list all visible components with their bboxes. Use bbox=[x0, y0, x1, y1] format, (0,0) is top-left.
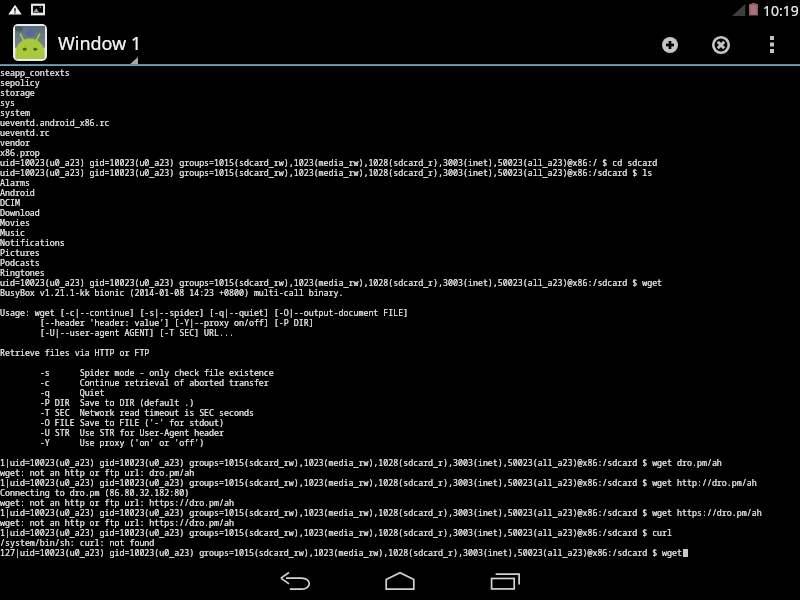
staticText: x86.prop bbox=[0, 147, 40, 158]
button[interactable]: Terminal output bbox=[0, 66, 800, 558]
staticText: Usage: wget [-c|--continue] [-s|--spider… bbox=[0, 307, 409, 318]
button[interactable]: Recent apps bbox=[455, 560, 555, 600]
staticText: Retrieve files via HTTP or FTP bbox=[0, 347, 150, 358]
staticText: -U STR Use STR for User-Agent header bbox=[0, 427, 225, 438]
staticText: DCIM bbox=[0, 197, 20, 208]
staticText: Download bbox=[0, 207, 40, 218]
staticText: BusyBox v1.21.1-kk bionic (2014-01-08 14… bbox=[0, 287, 344, 298]
staticText: Android bbox=[0, 187, 35, 198]
staticText: Podcasts bbox=[0, 257, 40, 268]
staticText: sys bbox=[0, 97, 15, 108]
button[interactable]: New window bbox=[646, 25, 694, 64]
staticText: ueventd.android_x86.rc bbox=[0, 117, 110, 128]
staticText: Connecting to dro.pm (86.80.32.182:80) bbox=[0, 487, 190, 498]
staticText: Music bbox=[0, 227, 25, 238]
staticText: -Y Use proxy ('on' or 'off') bbox=[0, 437, 205, 448]
staticText: Ringtones bbox=[0, 267, 45, 278]
button[interactable]: Window 1 bbox=[8, 25, 148, 64]
staticText: -c Continue retrieval of aborted transfe… bbox=[0, 377, 269, 388]
staticText: sepolicy bbox=[0, 77, 40, 88]
staticText: Alarms bbox=[0, 177, 30, 188]
staticText: -q Quiet bbox=[0, 387, 105, 398]
staticText: -P DIR Save to DIR (default .) bbox=[0, 397, 195, 408]
staticText: 1|uid=10023(u0_a23) gid=10023(u0_a23) gr… bbox=[0, 457, 722, 468]
staticText: -T SEC Network read timeout is SEC secon… bbox=[0, 407, 254, 418]
button[interactable]: Back bbox=[245, 560, 345, 600]
staticText: 1|uid=10023(u0_a23) gid=10023(u0_a23) gr… bbox=[0, 527, 673, 538]
staticText: storage bbox=[0, 87, 35, 98]
button[interactable]: More options bbox=[752, 25, 792, 64]
staticText: wget: not an http or ftp url: https://dr… bbox=[0, 497, 234, 508]
staticText: vendor bbox=[0, 137, 30, 148]
staticText: ueventd.rc bbox=[0, 127, 50, 138]
staticText: uid=10023(u0_a23) gid=10023(u0_a23) grou… bbox=[0, 157, 658, 168]
staticText: [--header 'header: value'] [-Y|--proxy o… bbox=[0, 317, 314, 328]
staticText: 127|uid=10023(u0_a23) gid=10023(u0_a23) … bbox=[0, 547, 683, 558]
staticText: Window 1 bbox=[58, 31, 142, 56]
staticText: [-U|--user-agent AGENT] [-T SEC] URL... bbox=[0, 327, 234, 338]
staticText: wget: not an http or ftp url: dro.pm/ah bbox=[0, 467, 195, 478]
staticText: system bbox=[0, 107, 30, 118]
staticText: seapp_contexts bbox=[0, 67, 70, 78]
staticText: uid=10023(u0_a23) gid=10023(u0_a23) grou… bbox=[0, 277, 663, 288]
staticText: Notifications bbox=[0, 237, 65, 248]
staticText: Pictures bbox=[0, 247, 40, 258]
button[interactable]: Close window bbox=[697, 25, 745, 64]
staticText: -O FILE Save to FILE ('-' for stdout) bbox=[0, 417, 225, 428]
staticText: 10:19 bbox=[763, 1, 799, 20]
staticText: 1|uid=10023(u0_a23) gid=10023(u0_a23) gr… bbox=[0, 477, 757, 488]
staticText: Movies bbox=[0, 217, 30, 228]
staticText: /system/bin/sh: curl: not found bbox=[0, 537, 155, 548]
button[interactable]: Home bbox=[350, 560, 450, 600]
staticText: -s Spider mode - only check file existen… bbox=[0, 367, 274, 378]
staticText: uid=10023(u0_a23) gid=10023(u0_a23) grou… bbox=[0, 167, 653, 178]
staticText: 1|uid=10023(u0_a23) gid=10023(u0_a23) gr… bbox=[0, 507, 762, 518]
staticText: wget: not an http or ftp url: https://dr… bbox=[0, 517, 234, 528]
